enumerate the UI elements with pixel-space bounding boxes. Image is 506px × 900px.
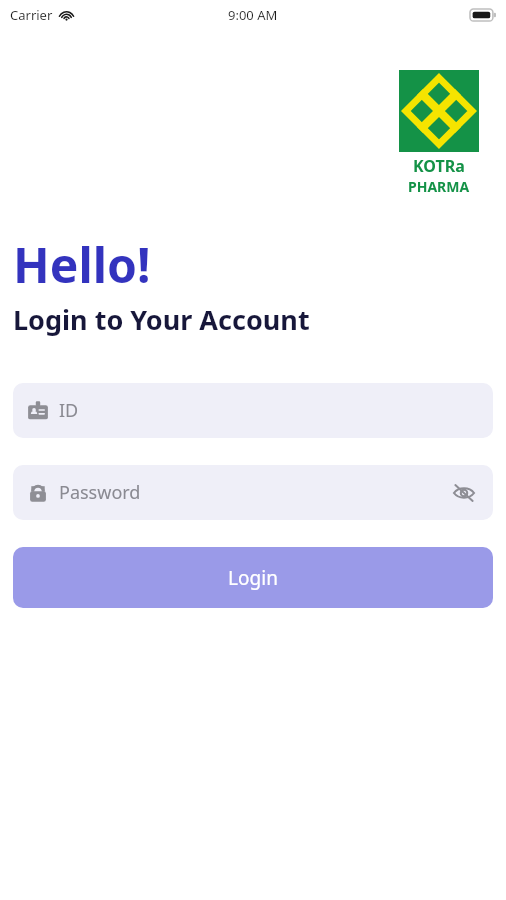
staticText: ID bbox=[59, 398, 479, 423]
staticText: Carrier bbox=[10, 6, 53, 24]
button[interactable]: Show password bbox=[449, 478, 479, 508]
staticText: 9:00 AM bbox=[228, 6, 278, 24]
staticText: Password bbox=[59, 480, 449, 505]
staticText: KOTRa bbox=[413, 155, 465, 177]
button[interactable]: Login bbox=[13, 547, 493, 608]
staticText: Login to Your Account bbox=[13, 301, 310, 338]
button[interactable]: Password bbox=[13, 465, 493, 520]
staticText: Login bbox=[228, 565, 278, 591]
staticText: Hello! bbox=[13, 232, 151, 297]
staticText: PHARMA bbox=[408, 177, 470, 196]
button[interactable]: ID bbox=[13, 383, 493, 438]
